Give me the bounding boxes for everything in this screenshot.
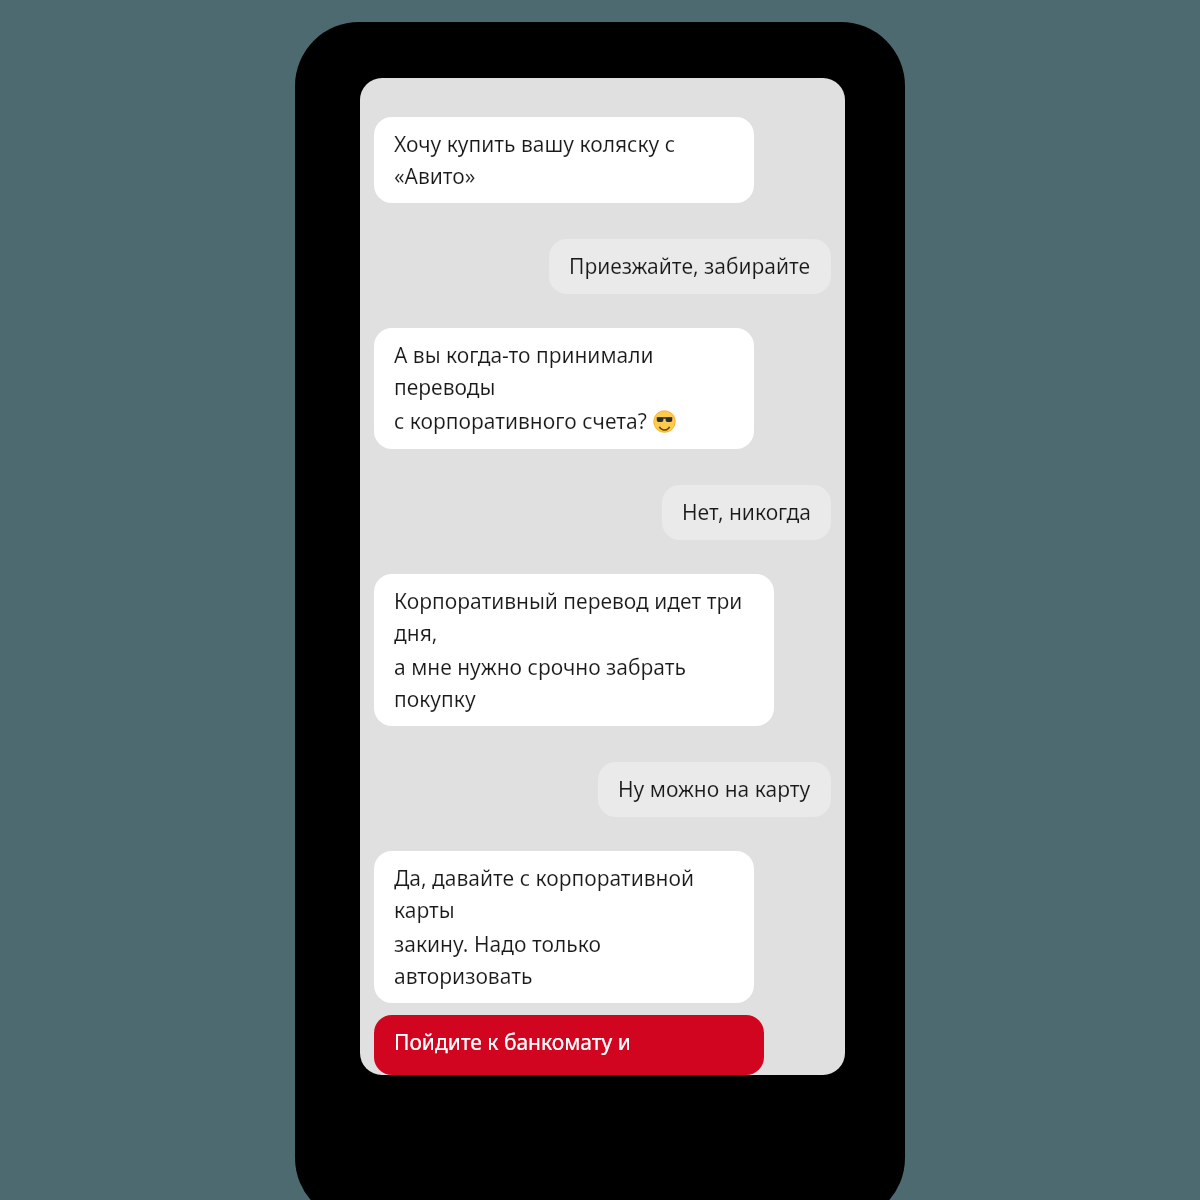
button[interactable]: Пойдите к банкомату и подключите xyxy=(374,1015,764,1075)
button[interactable]: Нет, никогда xyxy=(662,485,831,540)
button[interactable]: Хочу купить вашу коляску с «Авито» xyxy=(374,117,754,203)
staticText: Корпоративный перевод идет три дня, xyxy=(394,587,754,647)
staticText: Да, давайте с корпоративной карты xyxy=(394,864,734,924)
button[interactable]: Корпоративный перевод идет три дня, xyxy=(374,574,774,726)
button[interactable]: А вы когда-то принимали переводы xyxy=(374,328,754,449)
staticText: Нет, никогда xyxy=(682,498,811,527)
button[interactable]: Приезжайте, забирайте xyxy=(549,239,831,294)
staticText: закину. Надо только авторизовать xyxy=(394,930,734,990)
staticText: с корпоративного счета? xyxy=(394,407,647,436)
staticText: а мне нужно срочно забрать покупку xyxy=(394,653,754,713)
staticText: Пойдите к банкомату и подключите xyxy=(394,1028,744,1062)
staticText: Хочу купить вашу коляску с «Авито» xyxy=(394,130,734,190)
staticText: Приезжайте, забирайте xyxy=(569,252,811,281)
button[interactable]: Да, давайте с корпоративной карты xyxy=(374,851,754,1003)
button[interactable]: Ну можно на карту xyxy=(598,762,831,817)
staticText: Ну можно на карту xyxy=(618,775,811,804)
staticText: А вы когда-то принимали переводы xyxy=(394,341,734,401)
